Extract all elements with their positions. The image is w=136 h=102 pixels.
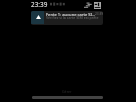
- staticText: Fente 1: aucune carte SI…: [46, 12, 96, 18]
- staticText: Gérer: [62, 89, 72, 94]
- button[interactable]: Fente 1: aucune carte SI…: [31, 11, 103, 25]
- staticText: Vérifiez si la carte SIM est prête: [46, 15, 99, 20]
- staticText: 23:39: [95, 12, 103, 16]
- button[interactable]: Gérer: [59, 88, 75, 95]
- staticText: 23:39: [31, 0, 48, 9]
- button[interactable]: Home: [32, 96, 103, 99]
